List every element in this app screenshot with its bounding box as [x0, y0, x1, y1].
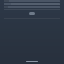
button[interactable]: More [26, 61, 38, 62]
button[interactable] [4, 6, 60, 8]
button[interactable] [4, 0, 60, 2]
button[interactable] [4, 3, 60, 5]
button[interactable]: Start [29, 12, 35, 15]
